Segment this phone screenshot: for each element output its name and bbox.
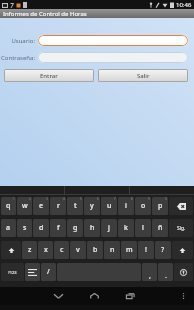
button[interactable]: x (38, 241, 53, 259)
button[interactable]: h (84, 219, 100, 237)
button[interactable]: ! (138, 241, 154, 259)
staticText: s (23, 223, 27, 233)
staticText: g (73, 223, 78, 233)
button[interactable]: Hide keyboard (40, 287, 76, 305)
button[interactable]: Voice input (174, 263, 193, 281)
staticText: 10:46 (176, 1, 192, 9)
button[interactable]: ? (155, 241, 171, 259)
button[interactable]: Shift (172, 241, 193, 259)
staticText: 8 (131, 197, 133, 201)
button[interactable]: Home (76, 287, 112, 305)
staticText: Informes de Control de Horas (3, 10, 87, 18)
button[interactable]: Shift (1, 241, 21, 259)
button[interactable]: ñ (152, 219, 168, 237)
staticText: n (110, 245, 115, 255)
button[interactable]: f (50, 219, 66, 237)
button[interactable]: Switch input method (25, 263, 40, 281)
staticText: Entrar (40, 72, 58, 80)
staticText: 3 (46, 197, 48, 201)
button[interactable]: n (104, 241, 120, 259)
button[interactable]: 3 (33, 197, 49, 215)
staticText: r (57, 201, 60, 211)
button[interactable]: . (158, 263, 173, 281)
staticText: 0 (165, 197, 167, 201)
staticText: ! (145, 245, 147, 255)
button[interactable]: 8 (118, 197, 134, 215)
staticText: h (90, 223, 95, 233)
button[interactable]: 7 (101, 197, 117, 215)
button[interactable]: z (22, 241, 37, 259)
staticText: m (126, 245, 133, 255)
button[interactable]: Entrar (4, 69, 94, 82)
button[interactable]: 4 (50, 197, 66, 215)
staticText: Contraseña: (0, 54, 35, 62)
staticText: . (165, 271, 167, 281)
staticText: ñ (158, 223, 163, 233)
button[interactable]: k (118, 219, 134, 237)
button[interactable]: Sig. (169, 219, 193, 237)
button[interactable]: Recent apps (112, 287, 148, 305)
staticText: w (22, 201, 28, 211)
staticText: 6 (97, 197, 99, 201)
button[interactable]: d (33, 219, 49, 237)
staticText: / (47, 267, 50, 277)
button[interactable]: Salir (98, 69, 188, 82)
staticText: 7 (114, 197, 116, 201)
staticText: Salir (137, 72, 150, 80)
staticText: c (60, 245, 64, 255)
staticText: l (142, 223, 144, 233)
button[interactable]: 5 (67, 197, 83, 215)
staticText: , (149, 271, 151, 281)
staticText: t (74, 201, 77, 211)
staticText: Sig. (177, 225, 186, 232)
staticText: u (107, 201, 112, 211)
staticText: ? (161, 245, 165, 255)
staticText: y (90, 201, 94, 211)
button[interactable]: s (17, 219, 32, 237)
button[interactable]: 2 (17, 197, 32, 215)
staticText: 5 (80, 197, 82, 201)
button[interactable]: j (101, 219, 117, 237)
staticText: d (39, 223, 44, 233)
staticText: Usuario: (0, 37, 35, 45)
button[interactable]: b (87, 241, 103, 259)
staticText: ?123 (8, 270, 17, 275)
staticText: e (39, 201, 44, 211)
staticText: 2 (29, 197, 31, 201)
staticText: q (6, 201, 11, 211)
button[interactable]: g (67, 219, 83, 237)
button[interactable]: 0 (152, 197, 168, 215)
staticText: f (57, 223, 60, 233)
staticText: p (158, 201, 163, 211)
staticText: k (124, 223, 128, 233)
staticText: z (28, 245, 32, 255)
button[interactable]: / (41, 263, 56, 281)
button[interactable] (38, 52, 188, 63)
staticText: 4 (63, 197, 65, 201)
button[interactable]: Delete (169, 197, 193, 215)
staticText: 1 (13, 197, 15, 201)
button[interactable]: m (121, 241, 137, 259)
button[interactable]: v (70, 241, 86, 259)
button[interactable]: 9 (135, 197, 151, 215)
staticText: b (93, 245, 98, 255)
button[interactable]: More options (173, 287, 194, 305)
button[interactable]: c (54, 241, 69, 259)
button[interactable]: l (135, 219, 151, 237)
button[interactable]: 6 (84, 197, 100, 215)
staticText: j (108, 223, 110, 233)
button[interactable] (38, 35, 188, 46)
button[interactable]: ?123 (1, 263, 24, 281)
button[interactable]: 1 (1, 197, 16, 215)
staticText: x (44, 245, 48, 255)
button[interactable]: a (1, 219, 16, 237)
button[interactable]: , (142, 263, 157, 281)
staticText: v (76, 245, 80, 255)
staticText: 9 (148, 197, 150, 201)
staticText: o (141, 201, 146, 211)
staticText: i (125, 201, 127, 211)
